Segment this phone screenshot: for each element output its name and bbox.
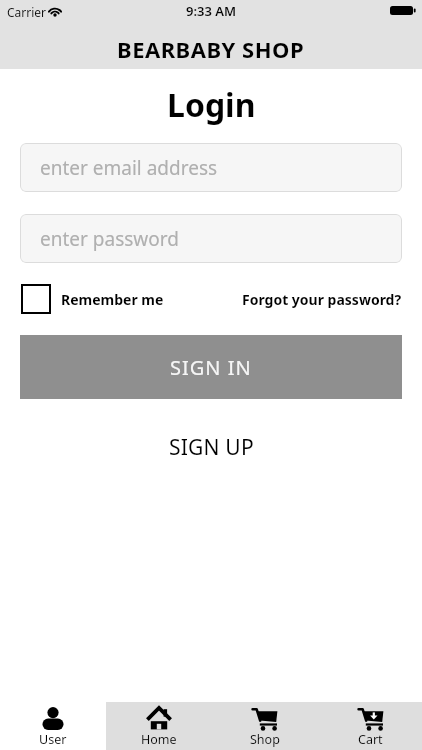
staticText: Cart bbox=[358, 731, 383, 748]
staticText: SIGN IN bbox=[170, 354, 252, 381]
staticText: BEARBABY SHOP bbox=[117, 34, 305, 64]
staticText: Login bbox=[167, 83, 256, 127]
button[interactable]: Home bbox=[106, 695, 212, 750]
button[interactable]: Cart bbox=[318, 695, 422, 750]
button[interactable]: SIGN UP bbox=[169, 433, 254, 462]
button[interactable]: Shop bbox=[212, 695, 318, 750]
button[interactable]: Remember me bbox=[61, 284, 164, 314]
staticText: SIGN UP bbox=[169, 433, 254, 462]
button[interactable]: enter password bbox=[20, 214, 402, 263]
button[interactable]: User bbox=[0, 695, 106, 750]
button[interactable]: Forgot your password? bbox=[242, 290, 402, 309]
button[interactable]: SIGN IN bbox=[20, 335, 402, 399]
staticText: Home bbox=[141, 731, 177, 748]
staticText: Shop bbox=[250, 731, 280, 748]
staticText: 9:33 AM bbox=[186, 2, 237, 20]
button[interactable] bbox=[21, 284, 51, 314]
staticText: Carrier bbox=[7, 4, 47, 20]
staticText: User bbox=[39, 731, 67, 748]
button[interactable]: enter email address bbox=[20, 143, 402, 192]
staticText: Remember me bbox=[61, 290, 164, 309]
staticText: enter email address bbox=[40, 155, 218, 181]
staticText: Forgot your password? bbox=[242, 290, 402, 309]
staticText: enter password bbox=[40, 226, 179, 252]
